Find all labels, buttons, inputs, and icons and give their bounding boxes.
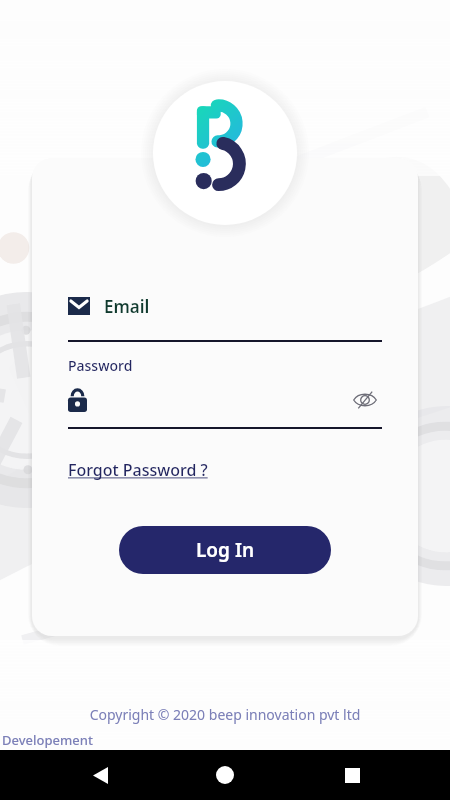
button[interactable]: Password: [68, 356, 382, 415]
button[interactable]: Home: [208, 758, 242, 792]
staticText: Copyright © 2020 beep innovation pvt ltd: [0, 705, 450, 724]
button[interactable]: Log In: [119, 526, 331, 574]
staticText: Developement: [2, 731, 93, 749]
button[interactable]: Back: [84, 759, 116, 791]
button[interactable]: Email: [68, 286, 382, 326]
staticText: Forgot Password ?: [68, 459, 208, 481]
staticText: Password: [68, 356, 133, 375]
staticText: Log In: [196, 537, 255, 563]
staticText: Email: [104, 295, 150, 318]
button[interactable]: Recent apps: [336, 759, 368, 791]
button[interactable]: Show password: [348, 385, 382, 415]
button[interactable]: Forgot Password ?: [68, 459, 208, 481]
